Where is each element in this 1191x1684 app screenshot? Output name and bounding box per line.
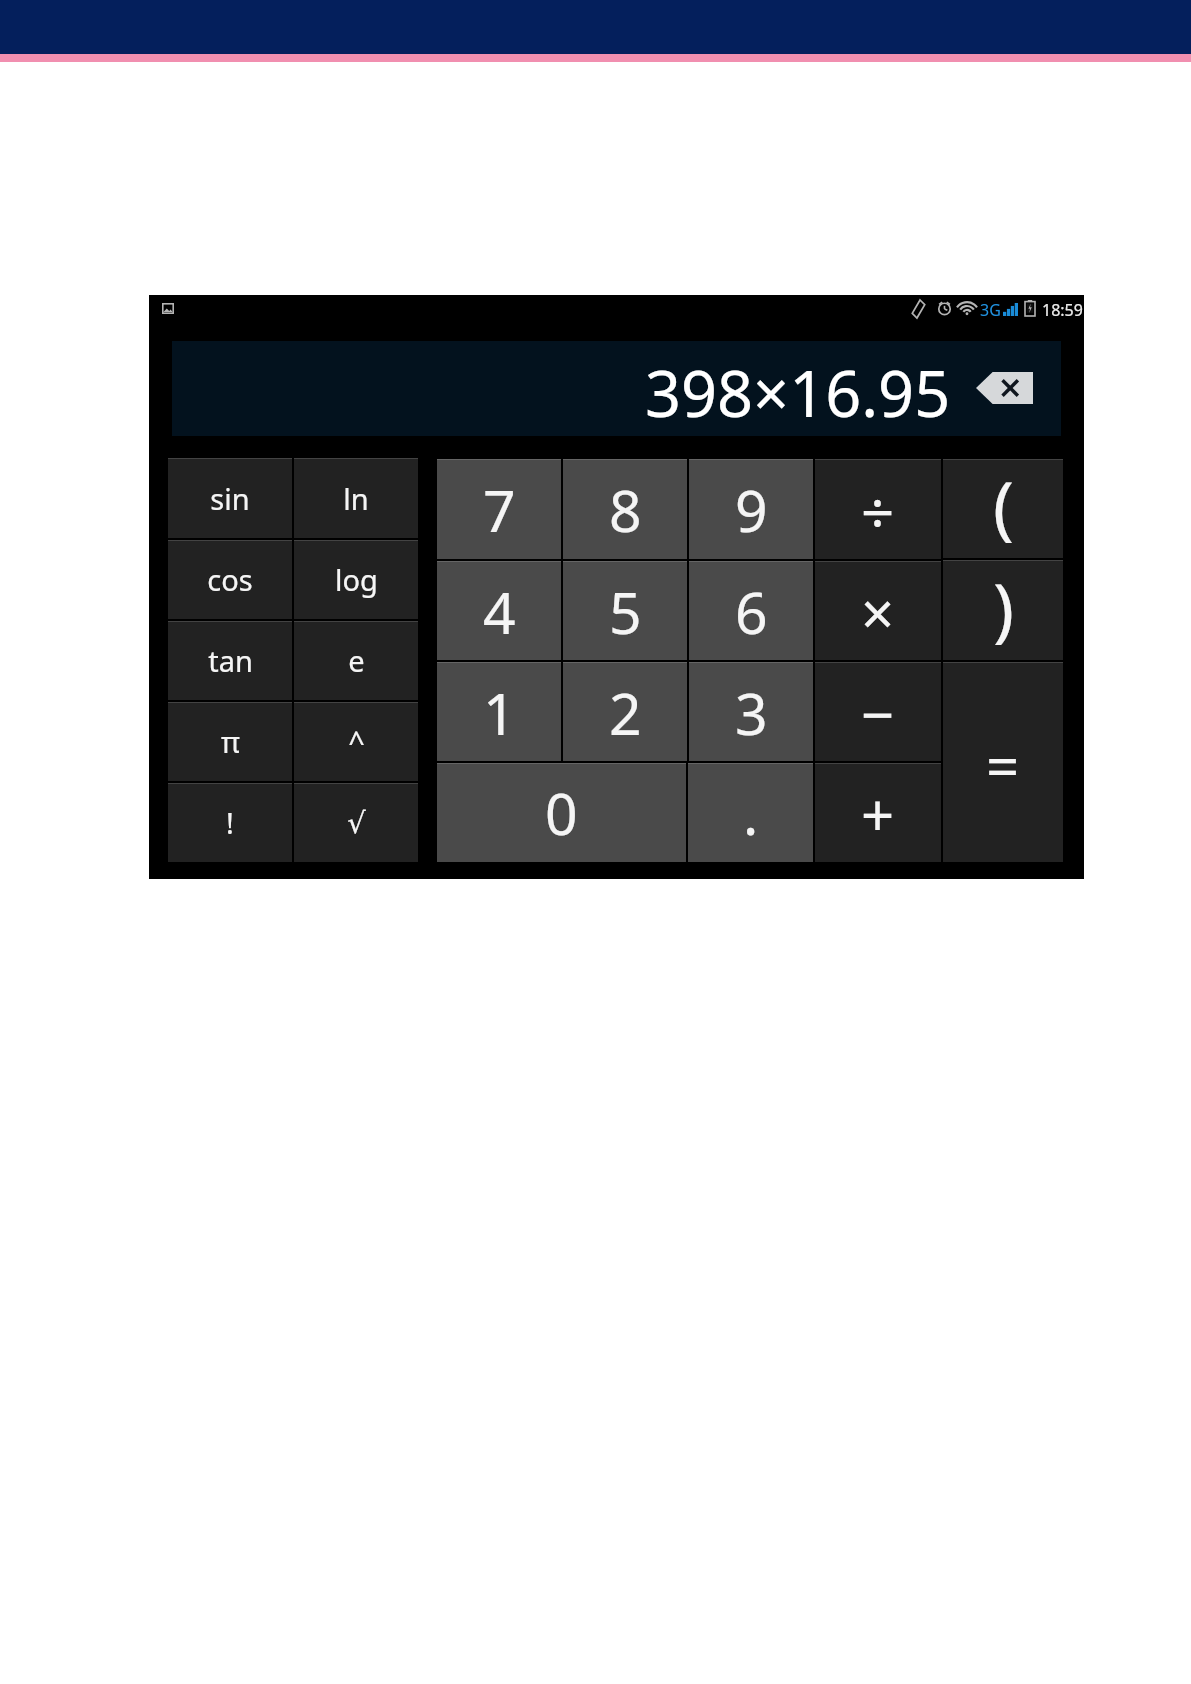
staticText: = <box>986 726 1020 805</box>
button[interactable]: = <box>943 662 1063 862</box>
staticText: 18:59 <box>1042 299 1083 321</box>
staticText: 3 <box>735 674 768 752</box>
staticText: 4 <box>483 573 516 651</box>
button[interactable]: ÷ <box>815 459 941 559</box>
button[interactable]: √ <box>294 783 418 862</box>
staticText: 0 <box>545 774 578 852</box>
staticText: ) <box>993 559 1014 654</box>
button[interactable]: π <box>168 702 292 781</box>
button[interactable]: ln <box>294 458 418 538</box>
button[interactable]: 6 <box>689 561 813 660</box>
button[interactable]: + <box>815 763 941 862</box>
staticText: + <box>861 775 895 854</box>
button[interactable]: ! <box>168 783 292 862</box>
button[interactable]: 4 <box>437 561 561 660</box>
staticText: ! <box>226 803 234 842</box>
button[interactable]: 2 <box>563 662 687 761</box>
button[interactable]: cos <box>168 540 292 619</box>
button[interactable]: . <box>688 763 813 862</box>
button[interactable]: 8 <box>563 459 687 559</box>
staticText: − <box>861 674 895 753</box>
button[interactable]: 5 <box>563 561 687 660</box>
button[interactable]: ) <box>943 560 1063 660</box>
staticText: cos <box>207 560 253 599</box>
button[interactable]: e <box>294 621 418 700</box>
button[interactable]: 7 <box>437 459 561 559</box>
staticText: log <box>335 560 378 599</box>
staticText: √ <box>347 806 366 840</box>
button[interactable]: 1 <box>437 662 561 761</box>
staticText: e <box>348 641 365 680</box>
staticText: ÷ <box>861 472 895 551</box>
staticText: . <box>743 774 759 852</box>
staticText: 8 <box>609 471 642 549</box>
staticText: tan <box>208 641 253 680</box>
button[interactable]: 0 <box>437 763 686 862</box>
button[interactable]: ^ <box>294 702 418 781</box>
staticText: × <box>861 573 895 652</box>
button[interactable]: × <box>815 561 941 660</box>
button[interactable]: ( <box>943 459 1063 558</box>
button[interactable]: tan <box>168 621 292 700</box>
staticText: 6 <box>735 573 768 651</box>
staticText: 3G <box>980 299 1001 321</box>
button[interactable]: log <box>294 540 418 619</box>
staticText: 2 <box>609 674 642 752</box>
staticText: 398×16.95 <box>645 350 951 436</box>
button[interactable]: sin <box>168 458 292 538</box>
staticText: ( <box>993 457 1014 552</box>
staticText: π <box>221 722 240 761</box>
staticText: 7 <box>483 471 516 549</box>
staticText: sin <box>210 479 250 518</box>
button[interactable]: − <box>815 662 941 761</box>
staticText: ^ <box>348 722 365 761</box>
staticText: 9 <box>735 471 768 549</box>
button[interactable]: 3 <box>689 662 813 761</box>
button[interactable]: 9 <box>689 459 813 559</box>
staticText: ln <box>343 479 369 518</box>
staticText: 5 <box>609 573 642 651</box>
button[interactable]: Backspace <box>976 372 1033 404</box>
staticText: 1 <box>483 674 516 752</box>
